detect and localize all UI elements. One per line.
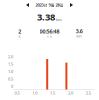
staticText: 1.0 bbox=[8, 69, 13, 74]
staticText: 2023년 9월 28일 bbox=[35, 2, 63, 8]
staticText: 1.5 bbox=[50, 90, 55, 96]
staticText: 0 bbox=[11, 84, 13, 89]
staticText: 시간 bbox=[46, 35, 52, 38]
staticText: 2.5 bbox=[86, 90, 91, 96]
staticText: 0.5 bbox=[8, 76, 13, 81]
staticText: 1.5 bbox=[8, 61, 13, 67]
staticText: 2.0 bbox=[68, 90, 73, 96]
staticText: 3.6 bbox=[76, 28, 83, 35]
staticText: 3.38 bbox=[37, 11, 55, 23]
staticText: 회 bbox=[18, 35, 21, 38]
staticText: km/h bbox=[76, 35, 82, 38]
staticText: 1.0 bbox=[32, 90, 37, 96]
staticText: 2 bbox=[18, 28, 21, 35]
staticText: km bbox=[56, 17, 62, 22]
button[interactable]: Next bbox=[68, 1, 75, 9]
staticText: 00:56:48 bbox=[39, 28, 59, 35]
staticText: 0.5 bbox=[14, 90, 19, 96]
button[interactable]: Previous bbox=[24, 1, 31, 9]
staticText: 2.0 bbox=[8, 54, 13, 59]
